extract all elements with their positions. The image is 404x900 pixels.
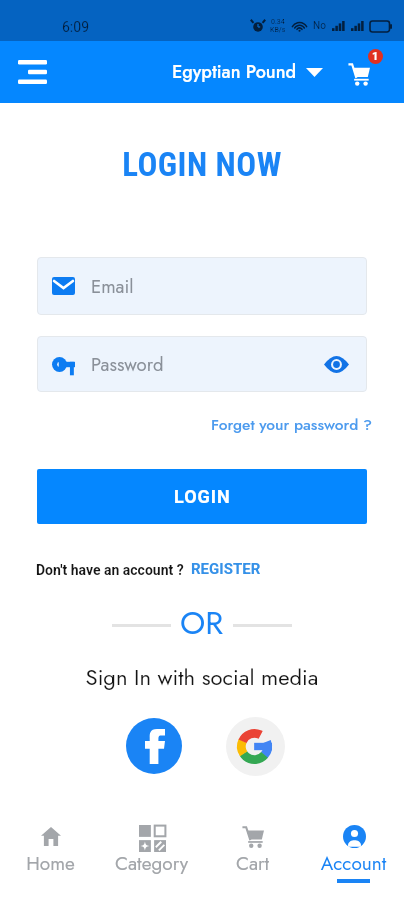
button[interactable]: Email	[37, 257, 367, 315]
staticText: 0.34	[271, 18, 285, 26]
staticText: Account	[303, 850, 404, 877]
staticText: Forget your password ?	[0, 413, 372, 435]
button[interactable]: Menu	[10, 50, 54, 94]
staticText: KB/s	[270, 26, 286, 34]
staticText: Category	[101, 850, 202, 877]
button[interactable]: Cart	[202, 800, 303, 900]
button[interactable]: Sign in with Facebook	[126, 718, 182, 774]
button[interactable]: REGISTER	[191, 560, 261, 578]
button[interactable]: LOGIN	[37, 469, 367, 524]
staticText: Password	[91, 351, 164, 378]
button[interactable]: Cart	[340, 52, 380, 92]
staticText: Egyptian Pound	[172, 59, 297, 85]
staticText: LOGIN	[174, 486, 231, 507]
staticText: Email	[91, 273, 134, 300]
staticText: Home	[0, 850, 101, 877]
button[interactable]: Category	[101, 800, 202, 900]
button[interactable]: Account	[303, 800, 404, 900]
staticText: 6:09	[62, 19, 89, 35]
button[interactable]: Password	[37, 336, 367, 392]
staticText: Don't have an account ?	[36, 562, 184, 578]
staticText: OR	[180, 600, 224, 646]
staticText: 1	[372, 50, 379, 63]
staticText: No	[313, 20, 326, 32]
button[interactable]: Sign in with Google	[226, 717, 285, 776]
button[interactable]: Show password	[321, 349, 351, 379]
staticText: Sign In with social media	[0, 661, 404, 693]
button[interactable]: Egyptian Pound	[172, 51, 323, 93]
staticText: LOGIN NOW	[0, 145, 404, 184]
staticText: Cart	[202, 850, 303, 877]
button[interactable]: Home	[0, 800, 101, 900]
